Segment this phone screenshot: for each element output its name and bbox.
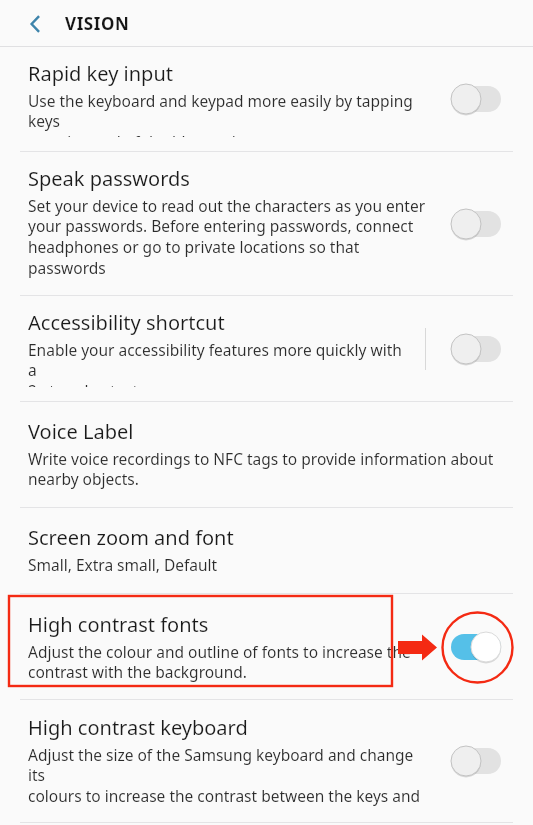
- staticText: Rapid key input: [28, 60, 173, 87]
- staticText: Adjust the colour and outline of fonts t…: [28, 641, 411, 683]
- button[interactable]: Voice Label: [0, 402, 533, 507]
- button[interactable]: Switch on: [450, 631, 502, 663]
- button[interactable]: Rapid key input: [0, 47, 533, 151]
- staticText: Small, Extra small, Default: [28, 554, 218, 575]
- button[interactable]: Speak passwords: [0, 152, 533, 295]
- staticText: Speak passwords: [28, 165, 190, 192]
- staticText: Write voice recordings to NFC tags to pr…: [28, 448, 494, 490]
- button[interactable]: Back: [14, 2, 58, 46]
- button[interactable]: High contrast fonts: [0, 594, 533, 699]
- staticText: Voice Label: [28, 418, 134, 445]
- staticText: Screen zoom and font: [28, 524, 234, 551]
- staticText: High contrast keyboard: [28, 714, 248, 741]
- staticText: Adjust the size of the Samsung keyboard …: [28, 744, 428, 808]
- staticText: Set your device to read out the characte…: [28, 195, 428, 281]
- button[interactable]: Switch off: [450, 208, 502, 240]
- staticText: VISION: [65, 12, 130, 35]
- button[interactable]: Switch off: [450, 745, 502, 777]
- button[interactable]: Switch off: [450, 83, 502, 115]
- button[interactable]: Accessibility shortcut: [0, 296, 533, 401]
- staticText: High contrast fonts: [28, 611, 209, 638]
- button[interactable]: High contrast keyboard: [0, 700, 533, 822]
- button[interactable]: Screen zoom and font: [0, 508, 533, 593]
- button[interactable]: Switch off: [450, 333, 502, 365]
- staticText: Accessibility shortcut: [28, 309, 225, 336]
- staticText: Use the keyboard and keypad more easily …: [28, 90, 428, 137]
- staticText: Enable your accessibility features more …: [28, 339, 413, 387]
